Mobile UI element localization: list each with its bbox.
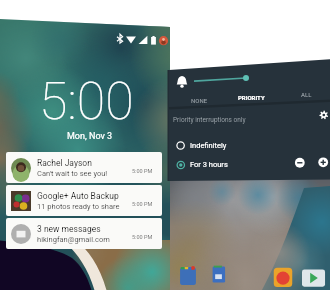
button[interactable]: Rachel Jayson xyxy=(6,152,162,183)
button[interactable]: Play Store xyxy=(302,268,326,290)
staticText: PRIORITY xyxy=(238,94,265,101)
button[interactable]: Settings xyxy=(319,110,329,120)
button[interactable]: Google+ Auto Backup xyxy=(6,185,162,216)
button[interactable]: PRIORITY xyxy=(234,92,268,103)
button[interactable]: ALL xyxy=(297,89,315,100)
button[interactable]: Docs xyxy=(211,265,227,281)
staticText: Can't wait to see you! xyxy=(37,169,108,178)
button[interactable]: Indefinitely xyxy=(174,138,260,152)
button[interactable]: Camera xyxy=(272,266,294,288)
staticText: Rachel Jayson xyxy=(37,158,92,168)
staticText: Mon, Nov 3 xyxy=(67,131,113,142)
staticText: 5:00 xyxy=(39,71,134,132)
staticText: 5:00 PM xyxy=(132,234,153,240)
button[interactable]: Google xyxy=(179,266,197,284)
button[interactable]: Decrease xyxy=(295,158,305,168)
button[interactable]: NONE xyxy=(185,95,213,106)
staticText: 5:00 PM xyxy=(132,168,153,174)
button[interactable]: 3 new messages xyxy=(6,218,162,249)
staticText: For 3 hours xyxy=(190,160,228,169)
staticText: Priority interruptions only xyxy=(173,116,246,124)
button[interactable]: Notifications xyxy=(176,75,189,88)
button[interactable]: Increase xyxy=(318,157,328,167)
button[interactable]: For 3 hours xyxy=(174,157,260,171)
staticText: 5:00 PM xyxy=(132,201,153,207)
staticText: hikingfan@gmail.com xyxy=(37,235,110,244)
button[interactable]: Interruption volume xyxy=(192,74,250,86)
staticText: 3 new messages xyxy=(37,224,101,234)
staticText: 11 photos ready to share xyxy=(37,202,120,211)
staticText: ALL xyxy=(301,91,312,98)
staticText: NONE xyxy=(191,97,208,104)
staticText: Google+ Auto Backup xyxy=(37,191,119,201)
staticText: Indefinitely xyxy=(190,141,227,150)
